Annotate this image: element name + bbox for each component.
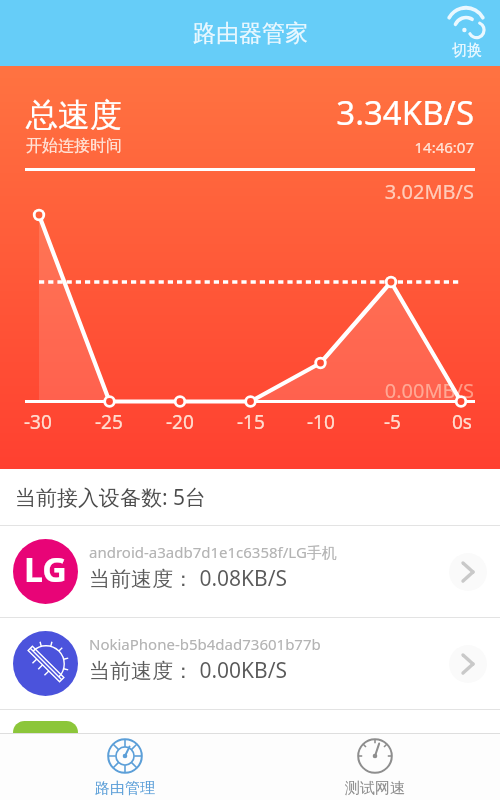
staticText: 测试网速 [345, 779, 405, 798]
staticText: 当前速度： 0.08KB/S [89, 564, 288, 593]
staticText: NokiaPhone-b5b4dad73601b77b [89, 634, 321, 654]
staticText: -30 [24, 409, 52, 435]
staticText: LG [24, 546, 67, 592]
staticText: 路由管理 [95, 779, 155, 798]
button[interactable]: NokiaPhone-b5b4dad73601b77b [0, 618, 500, 709]
staticText: 开始连接时间 [26, 136, 122, 156]
staticText: -5 [384, 409, 401, 435]
staticText: 当前速度： 0.00KB/S [89, 656, 288, 685]
staticText: 路由器管家 [193, 19, 308, 48]
staticText: -25 [95, 409, 123, 435]
staticText: android-a3adb7d1e1c6358f/LG手机 [89, 542, 337, 562]
staticText: -10 [307, 409, 335, 435]
button[interactable] [0, 710, 500, 733]
button[interactable]: 切换 Wi-Fi [440, 0, 500, 66]
staticText: -15 [237, 409, 265, 435]
staticText: 当前接入设备数: 5台 [15, 483, 207, 512]
button[interactable]: 路由管理 [0, 734, 250, 800]
staticText: 0s [452, 409, 472, 435]
staticText: 14:46:07 [0, 137, 474, 157]
button[interactable]: 测试网速 [250, 734, 500, 800]
staticText: 3.02MB/S [0, 178, 474, 205]
button[interactable]: LG [0, 526, 500, 617]
staticText: -20 [166, 409, 194, 435]
staticText: 切换 [452, 41, 482, 60]
staticText: 总速度 [26, 95, 122, 135]
staticText: 3.34KB/S [0, 90, 474, 135]
staticText: 0.00MB/S [0, 377, 474, 404]
